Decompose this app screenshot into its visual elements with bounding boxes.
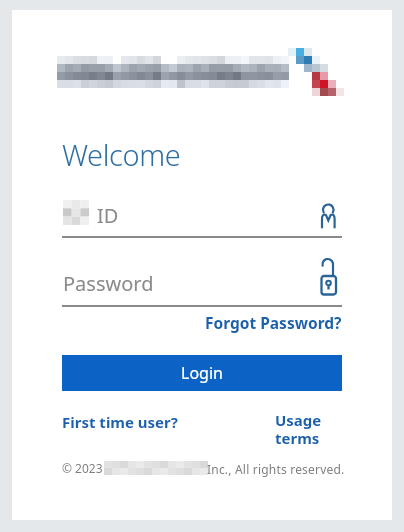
staticText: Login xyxy=(181,362,223,384)
staticText: © 2023 xyxy=(62,460,103,476)
staticText: Inc., All rights reserved. xyxy=(207,461,345,477)
staticText: Usage terms xyxy=(275,410,333,449)
staticText: Welcome xyxy=(62,135,181,174)
staticText: Password xyxy=(63,270,154,297)
button[interactable]: Forgot Password? xyxy=(205,312,342,333)
button[interactable]: First time user? xyxy=(62,412,178,432)
button[interactable]: ID xyxy=(62,196,342,236)
button[interactable]: Login xyxy=(62,355,342,391)
staticText: ID xyxy=(97,202,119,229)
button[interactable]: Password xyxy=(62,265,342,305)
button[interactable]: Usage terms xyxy=(275,410,333,449)
